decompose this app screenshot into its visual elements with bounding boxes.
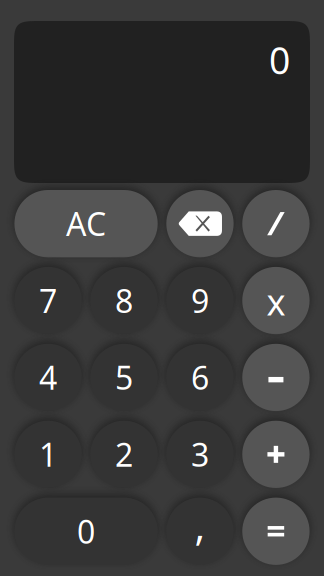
staticText: AC	[66, 202, 106, 245]
button[interactable]: ,	[166, 498, 234, 565]
button[interactable]: 5	[90, 344, 158, 411]
staticText: 7	[39, 279, 57, 322]
button[interactable]: 8	[90, 267, 158, 334]
staticText: x	[266, 278, 285, 325]
button[interactable]: 9	[166, 267, 234, 334]
button[interactable]: 7	[14, 267, 82, 334]
staticText: 4	[39, 356, 57, 399]
staticText: 0	[77, 510, 95, 552]
button[interactable]: Equals	[242, 498, 310, 565]
staticText: ,	[194, 499, 205, 552]
button[interactable]: Minus	[242, 344, 310, 411]
button[interactable]: 6	[166, 344, 234, 411]
button[interactable]: 2	[90, 421, 158, 488]
staticText: 0	[269, 35, 290, 85]
button[interactable]: 4	[14, 344, 82, 411]
staticText: 6	[191, 356, 209, 399]
button[interactable]: Delete	[166, 190, 234, 257]
staticText: 3	[191, 433, 209, 476]
staticText: 2	[115, 433, 133, 476]
staticText: 8	[115, 279, 133, 322]
button[interactable]: Divide	[242, 190, 310, 257]
button[interactable]: 3	[166, 421, 234, 488]
staticText: 9	[191, 279, 209, 322]
staticText: 5	[115, 356, 133, 399]
button[interactable]: AC	[14, 190, 158, 257]
button[interactable]: x	[242, 267, 310, 334]
button[interactable]: Plus	[242, 421, 310, 488]
button[interactable]: 1	[14, 421, 82, 488]
staticText: 1	[39, 433, 57, 476]
button[interactable]: 0	[14, 498, 158, 565]
